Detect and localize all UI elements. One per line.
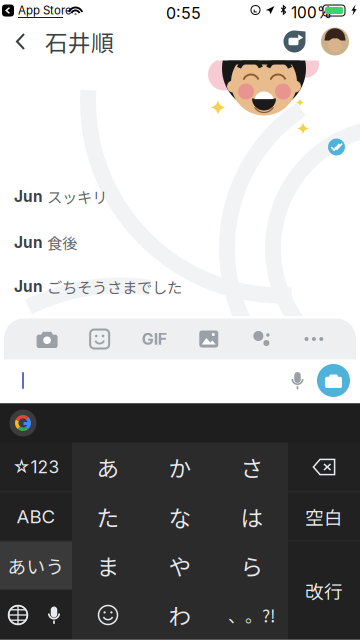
staticText: 、。?! [228,602,276,628]
button[interactable]: Contact profile [321,27,349,55]
staticText: 空白 [305,503,343,530]
button[interactable]: か [144,442,216,491]
button[interactable]: Camera [37,330,58,348]
staticText: Jun [14,233,43,252]
button[interactable]: は [216,492,288,540]
staticText: わ [168,599,191,631]
staticText: 100% [291,3,332,22]
button[interactable]: App Store [2,2,82,20]
staticText: スッキリ [47,185,107,208]
button[interactable]: Jun [0,186,360,206]
button[interactable]: Voice input [36,590,72,639]
staticText: か [168,451,191,483]
staticText: GIF [142,329,167,349]
button[interactable]: Assistant [251,330,272,348]
staticText: 石井順 [45,25,114,58]
button[interactable]: Take photo [317,364,350,397]
button[interactable]: さ [216,442,288,491]
button[interactable]: Google Search [6,406,40,440]
button[interactable]: Emoji [72,590,144,639]
button[interactable]: ま [72,541,144,589]
button[interactable]: Jun [0,232,360,252]
button[interactable]: Jun [0,276,360,296]
staticText: Jun [14,187,43,206]
staticText: Jun [14,277,43,296]
button[interactable]: た [72,492,144,540]
button[interactable]: More [304,336,323,341]
button[interactable]: ☆123 [0,442,72,491]
button[interactable]: な [144,492,216,540]
button[interactable]: Backspace [288,442,360,491]
staticText: あ [96,451,119,483]
button[interactable]: あ [72,442,144,491]
button[interactable]: ら [216,541,288,589]
button[interactable]: Gallery [199,330,218,347]
button[interactable]: Back [3,22,39,60]
staticText: さ [240,451,263,483]
staticText: ら [240,549,263,582]
staticText: ☆123 [12,456,59,477]
button[interactable]: Video call [282,29,308,53]
button[interactable]: Voice message [291,371,304,390]
button[interactable]: あいう [0,541,72,589]
staticText: は [240,500,263,533]
button[interactable]: 、。?! [216,590,288,639]
staticText: 食後 [47,231,77,254]
button[interactable]: Switch language [0,590,36,639]
staticText: な [168,500,191,533]
staticText: ま [96,549,119,582]
button[interactable]: や [144,541,216,589]
button[interactable]: わ [144,590,216,639]
staticText: ABC [16,505,55,528]
button[interactable]: GIF [142,329,167,349]
staticText: App Store [18,3,72,17]
button[interactable]: 空白 [288,492,360,540]
staticText: や [168,549,191,582]
button[interactable]: ABC [0,492,72,540]
staticText: あいう [7,552,64,579]
button[interactable]: 改行 [288,541,360,639]
staticText: 0:55 [166,3,201,23]
staticText: ごちそうさまでした [47,275,182,298]
staticText: 改行 [305,577,343,604]
button[interactable]: Stickers [90,329,109,348]
staticText: た [96,500,119,533]
